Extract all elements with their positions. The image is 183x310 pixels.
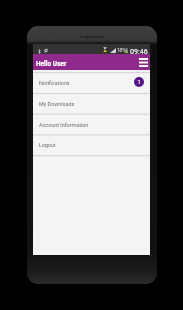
staticText: My Downloads	[39, 101, 75, 107]
button[interactable]: Logout	[33, 134, 150, 155]
button[interactable]: Notifications	[33, 72, 150, 93]
staticText: 09:46	[130, 47, 148, 55]
button[interactable]: Account Information	[33, 114, 150, 135]
button[interactable]: My Downloads	[33, 93, 150, 114]
button[interactable]: Menu	[136, 54, 150, 70]
staticText: Notifications	[39, 80, 70, 86]
staticText: 18%	[117, 48, 126, 53]
staticText: Hello User	[36, 60, 67, 68]
staticText: Account Information	[39, 122, 89, 128]
staticText: 1	[137, 79, 141, 85]
staticText: Logout	[39, 142, 56, 148]
